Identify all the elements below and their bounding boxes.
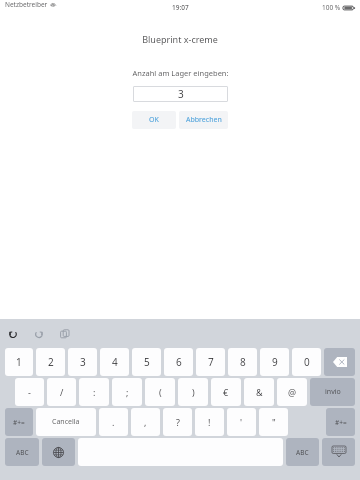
button[interactable]: 5 (132, 348, 161, 376)
staticText: Abbrechen (186, 115, 222, 125)
button[interactable]: @ (277, 378, 307, 406)
button[interactable]: OK (132, 111, 176, 129)
button[interactable]: " (259, 408, 288, 436)
button[interactable]: € (211, 378, 241, 406)
button[interactable]: Redo (32, 327, 46, 341)
staticText: @ (288, 386, 297, 398)
staticText: ' (240, 416, 243, 428)
staticText: ! (208, 416, 211, 428)
staticText: Blueprint x-creme (142, 33, 218, 45)
button[interactable]: 8 (228, 348, 257, 376)
staticText: 9 (272, 355, 278, 369)
staticText: 100 % (322, 3, 341, 12)
button[interactable]: ( (145, 378, 175, 406)
button[interactable]: 6 (164, 348, 193, 376)
button[interactable]: 2 (36, 348, 65, 376)
button[interactable]: ; (112, 378, 142, 406)
staticText: 7 (208, 355, 214, 369)
button[interactable]: - (15, 378, 44, 406)
staticText: 2 (48, 355, 54, 369)
staticText: 3 (80, 355, 86, 369)
button[interactable]: 7 (196, 348, 225, 376)
staticText: #+= (335, 418, 347, 427)
staticText: ABC (16, 448, 29, 457)
staticText: 6 (176, 355, 182, 369)
button[interactable]: 1 (5, 348, 33, 376)
staticText: invio (325, 387, 341, 397)
button[interactable]: Hide keyboard (322, 438, 355, 466)
staticText: € (223, 386, 229, 398)
staticText: 5 (144, 355, 150, 369)
button[interactable]: 3 (68, 348, 97, 376)
button[interactable]: 3 (133, 86, 228, 102)
button[interactable]: 4 (100, 348, 129, 376)
button[interactable]: ! (195, 408, 224, 436)
button[interactable]: Undo (6, 327, 20, 341)
staticText: " (272, 416, 276, 428)
button[interactable]: #+= (326, 408, 355, 436)
staticText: Netzbetreiber (5, 0, 48, 9)
staticText: #+= (13, 418, 25, 427)
staticText: / (60, 386, 64, 398)
button[interactable]: invio (310, 378, 355, 406)
staticText: 1 (16, 355, 22, 369)
button[interactable]: , (131, 408, 160, 436)
button[interactable]: Paste (58, 327, 72, 341)
staticText: - (28, 386, 31, 398)
button[interactable]: ABC (5, 438, 39, 466)
button[interactable]: ? (163, 408, 192, 436)
staticText: ( (159, 386, 162, 398)
staticText: Cancella (52, 417, 80, 427)
button[interactable]: 0 (292, 348, 321, 376)
button[interactable]: . (99, 408, 128, 436)
button[interactable]: ABC (286, 438, 319, 466)
staticText: Anzahl am Lager eingeben: (132, 68, 229, 78)
staticText: 4 (112, 355, 118, 369)
staticText: ) (192, 386, 195, 398)
button[interactable]: & (244, 378, 274, 406)
staticText: & (256, 386, 263, 398)
staticText: ; (126, 386, 129, 398)
staticText: 3 (178, 87, 184, 101)
button[interactable]: #+= (5, 408, 33, 436)
button[interactable]: Backspace (324, 348, 355, 376)
staticText: 8 (240, 355, 246, 369)
button[interactable]: Abbrechen (179, 111, 228, 129)
button[interactable]: Cancella (36, 408, 96, 436)
button[interactable]: : (79, 378, 109, 406)
staticText: ABC (296, 448, 309, 457)
button[interactable]: ) (178, 378, 208, 406)
staticText: . (112, 416, 115, 428)
button[interactable]: ' (227, 408, 256, 436)
staticText: OK (149, 115, 159, 125)
button[interactable]: Change language (42, 438, 75, 466)
button[interactable]: 9 (260, 348, 289, 376)
button[interactable]: / (47, 378, 76, 406)
staticText: 0 (304, 355, 310, 369)
staticText: , (144, 416, 147, 428)
staticText: ? (176, 416, 180, 428)
staticText: : (93, 386, 96, 398)
staticText: 19:07 (172, 3, 189, 12)
